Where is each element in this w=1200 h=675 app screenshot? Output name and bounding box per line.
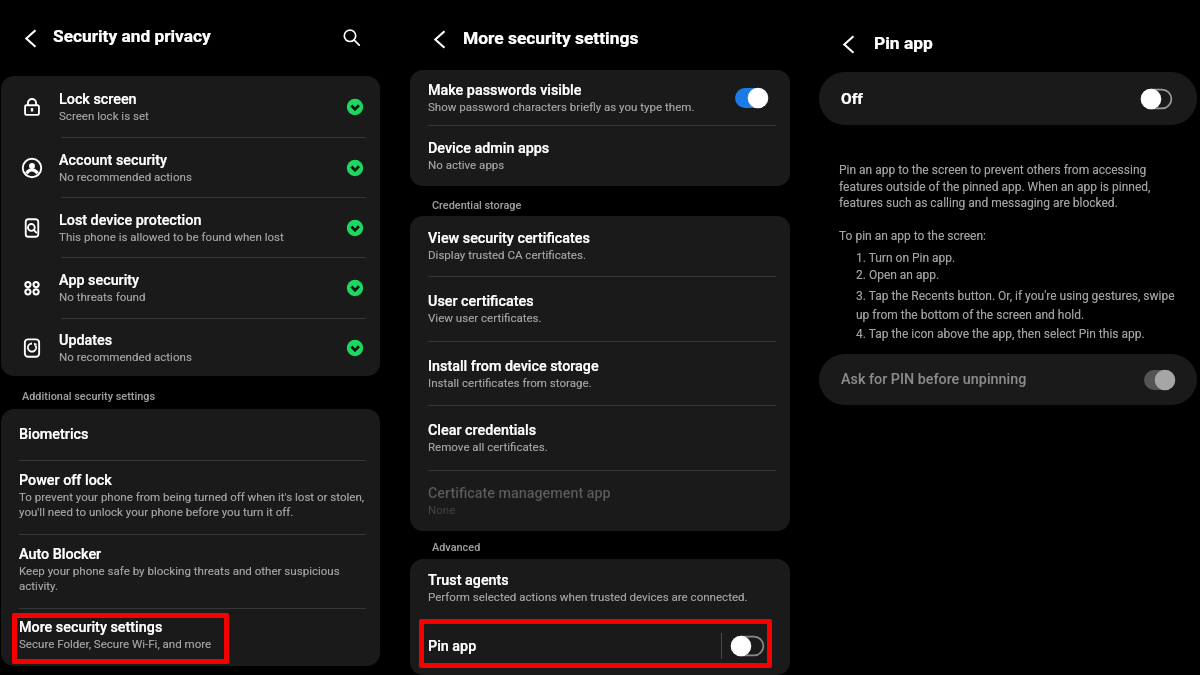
staticText: Ask for PIN before unpinning	[841, 371, 1144, 388]
staticText: Install certificates from storage.	[428, 376, 592, 390]
staticText: Lock screen	[59, 91, 137, 108]
button[interactable]: More security settings	[1, 609, 380, 666]
staticText: This phone is allowed to be found when l…	[59, 230, 284, 244]
staticText: App security	[59, 272, 140, 289]
button[interactable]: Biometrics	[1, 409, 380, 460]
button[interactable]: Off	[819, 72, 1197, 125]
staticText: No threats found	[59, 290, 146, 304]
staticText: Pin app	[874, 33, 933, 53]
staticText: Biometrics	[19, 426, 89, 443]
button[interactable]: Device admin apps	[410, 126, 790, 186]
button[interactable]: Back	[16, 24, 44, 52]
staticText: Trust agents	[428, 572, 509, 589]
staticText: Credential storage	[432, 199, 522, 212]
button[interactable]: Lock screen	[1, 76, 380, 137]
button[interactable]: Lost device protection	[1, 198, 380, 257]
button[interactable]: Trust agents	[410, 559, 790, 617]
button[interactable]: Make passwords visible	[410, 70, 790, 125]
button[interactable]: Back	[425, 25, 453, 53]
staticText: No recommended actions	[59, 170, 192, 184]
button[interactable]: App security	[1, 258, 380, 318]
staticText: To prevent your phone from being turned …	[19, 490, 366, 519]
staticText: More security settings	[19, 619, 163, 636]
button[interactable]: Back	[834, 30, 862, 58]
staticText: Show password characters briefly as you …	[428, 100, 695, 114]
staticText: Clear credentials	[428, 422, 537, 439]
button[interactable]: Auto Blocker	[1, 535, 380, 608]
staticText: 1. Turn on Pin app.	[856, 251, 956, 265]
button[interactable]: Search	[338, 24, 366, 52]
button[interactable]: Ask for PIN before unpinning	[819, 354, 1197, 405]
button[interactable]: Updates	[1, 319, 380, 376]
staticText: Additional security settings	[22, 390, 156, 403]
staticText: Power off lock	[19, 472, 112, 489]
staticText: Auto Blocker	[19, 546, 102, 563]
staticText: No recommended actions	[59, 350, 192, 364]
staticText: User certificates	[428, 293, 534, 310]
staticText: Remove all certificates.	[428, 440, 548, 454]
staticText: Install from device storage	[428, 358, 599, 375]
staticText: Security and privacy	[53, 26, 211, 46]
button[interactable]: User certificates	[410, 277, 790, 341]
staticText: Pin an app to the screen to prevent othe…	[839, 163, 1179, 210]
staticText: 2. Open an app.	[856, 268, 940, 282]
button[interactable]: Clear credentials	[410, 406, 790, 470]
staticText: Certificate management app	[428, 485, 611, 502]
staticText: Keep your phone safe by blocking threats…	[19, 564, 366, 593]
button[interactable]: Certificate management app	[410, 471, 790, 531]
staticText: 3. Tap the Recents button. Or, if you're…	[856, 289, 1179, 322]
button[interactable]: Power off lock	[1, 461, 380, 534]
button[interactable]: Pin app	[410, 617, 790, 675]
staticText: To pin an app to the screen:	[839, 229, 986, 243]
button[interactable]: Install from device storage	[410, 342, 790, 405]
staticText: View security certificates	[428, 230, 590, 247]
staticText: Advanced	[432, 541, 481, 554]
staticText: Device admin apps	[428, 140, 550, 157]
staticText: Pin app	[428, 638, 721, 655]
staticText: More security settings	[463, 28, 639, 48]
button[interactable]: Account security	[1, 138, 380, 197]
button[interactable]: View security certificates	[410, 216, 790, 276]
staticText: Perform selected actions when trusted de…	[428, 590, 748, 604]
staticText: Display trusted CA certificates.	[428, 248, 586, 262]
staticText: Secure Folder, Secure Wi‑Fi, and more	[19, 637, 212, 651]
staticText: Account security	[59, 152, 167, 169]
staticText: 4. Tap the icon above the app, then sele…	[856, 327, 1145, 341]
staticText: View user certificates.	[428, 311, 542, 325]
staticText: No active apps	[428, 158, 505, 172]
staticText: None	[428, 503, 456, 517]
staticText: Make passwords visible	[428, 82, 582, 99]
staticText: Screen lock is set	[59, 109, 149, 123]
staticText: Lost device protection	[59, 212, 202, 229]
staticText: Off	[841, 90, 1141, 108]
staticText: Updates	[59, 332, 113, 349]
